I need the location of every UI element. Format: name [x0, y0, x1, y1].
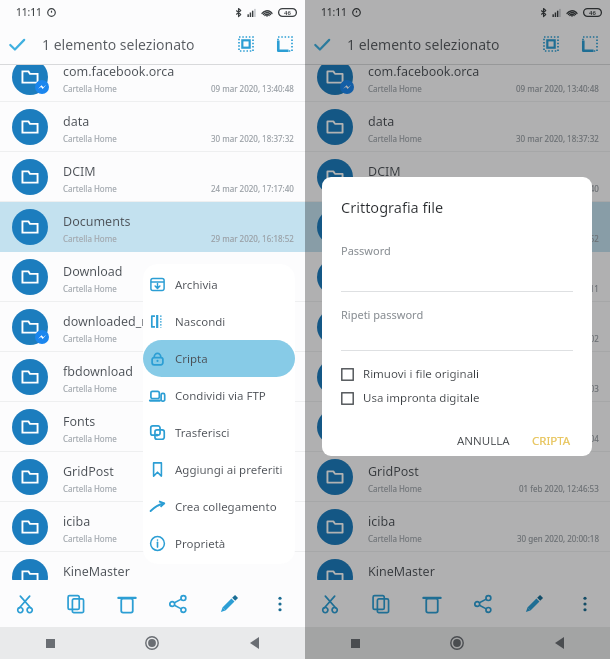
button[interactable]: com.facebook.orca	[0, 64, 305, 102]
button[interactable]: Done	[305, 28, 338, 61]
button[interactable]: Fonts	[305, 402, 610, 452]
staticText: 24 mar 2020, 17:17:40	[211, 183, 294, 194]
button[interactable]: Done	[0, 28, 33, 61]
button[interactable]: Back	[203, 627, 305, 659]
button[interactable]: Archivia	[143, 266, 295, 303]
staticText: 11:11	[321, 5, 347, 19]
staticText: Rimuovi i file originali	[363, 366, 480, 382]
staticText: 1 elemento selezionato	[42, 35, 195, 54]
button[interactable]: fbdownload	[305, 352, 610, 402]
button[interactable]: Rimuovi i file originali	[341, 363, 480, 385]
button[interactable]: Rename	[209, 580, 249, 627]
button[interactable]: Trasferisci	[143, 414, 295, 451]
staticText: data	[63, 113, 90, 130]
button[interactable]: Share	[158, 580, 198, 627]
button[interactable]: com.facebook.orca	[305, 64, 610, 102]
staticText: Cartella Home	[63, 533, 117, 544]
button[interactable]: Cut	[5, 580, 45, 627]
button[interactable]: Proprietà	[143, 525, 295, 562]
button[interactable]: Recents	[305, 627, 406, 659]
button[interactable]: DCIM	[0, 152, 305, 202]
button[interactable]: Rename	[514, 580, 554, 627]
button[interactable]: Nascondi	[143, 303, 295, 340]
button[interactable]: Invert selection	[269, 28, 301, 60]
button[interactable]: More options	[260, 580, 300, 627]
staticText: 01 feb 2020, 12:46:53	[519, 483, 599, 494]
button[interactable]: ANNULLA	[450, 427, 517, 455]
button[interactable]: Aggiungi ai preferiti	[143, 451, 295, 488]
staticText: Cartella Home	[63, 233, 117, 244]
button[interactable]: Select all	[535, 28, 567, 60]
staticText: Cartella Home	[368, 533, 422, 544]
staticText: 24 mar 2020, 17:17:40	[516, 183, 599, 194]
button[interactable]: Documents	[305, 202, 610, 252]
button[interactable]: Usa impronta digitale	[341, 387, 480, 409]
staticText: Cartella Home	[63, 283, 117, 294]
button[interactable]: Download	[0, 252, 305, 302]
staticText: fbdownload	[63, 363, 134, 380]
button[interactable]: Delete	[412, 580, 452, 627]
button[interactable]: data	[0, 102, 305, 152]
button[interactable]: Condividi via FTP	[143, 377, 295, 414]
button[interactable]: Share	[463, 580, 503, 627]
staticText: Archivia	[175, 277, 218, 293]
staticText: Crittografia file	[341, 197, 444, 217]
staticText: 25 mar 2020, 08:03:04	[211, 433, 294, 444]
staticText: Nascondi	[175, 314, 226, 330]
button[interactable]: Copy	[56, 580, 96, 627]
staticText: 28 mar 2020, 11:21:11	[516, 283, 599, 294]
button[interactable]: Cripta	[143, 340, 295, 377]
staticText: downloaded_r	[368, 313, 452, 330]
staticText: iciba	[368, 513, 396, 530]
button[interactable]: Invert selection	[574, 28, 606, 60]
button[interactable]: Home	[101, 627, 203, 659]
button[interactable]: downloaded_r	[305, 302, 610, 352]
staticText: Cartella Home	[368, 283, 422, 294]
staticText: DCIM	[368, 163, 401, 180]
staticText: 46	[589, 9, 596, 17]
button[interactable]: KineMaster	[0, 552, 305, 580]
staticText: 09 mar 2020, 13:40:48	[211, 83, 294, 94]
button[interactable]: DCIM	[305, 152, 610, 202]
button[interactable]: Delete	[107, 580, 147, 627]
button[interactable]: More options	[565, 580, 605, 627]
staticText: KineMaster	[368, 563, 435, 580]
button[interactable]: Download	[305, 252, 610, 302]
button[interactable]: Documents	[0, 202, 305, 252]
button[interactable]: Fonts	[0, 402, 305, 452]
staticText: Ripeti password	[341, 307, 424, 322]
staticText: Download	[63, 263, 123, 280]
staticText: 29 mar 2020, 16:18:52	[211, 233, 294, 244]
staticText: Cartella Home	[368, 133, 422, 144]
button[interactable]: Home	[406, 627, 508, 659]
button[interactable]: Back	[508, 627, 610, 659]
staticText: 1 elemento selezionato	[347, 35, 500, 54]
staticText: fbdownload	[368, 363, 439, 380]
staticText: Cartella Home	[63, 383, 117, 394]
staticText: Cartella Home	[63, 83, 117, 94]
staticText: CRIPTA	[532, 433, 571, 449]
staticText: Password	[341, 243, 391, 258]
button[interactable]: GridPost	[305, 452, 610, 502]
staticText: Cartella Home	[63, 433, 117, 444]
button[interactable]: data	[305, 102, 610, 152]
button[interactable]: Crea collegamento	[143, 488, 295, 525]
button[interactable]: CRIPTA	[525, 427, 578, 455]
button[interactable]: iciba	[305, 502, 610, 552]
staticText: Trasferisci	[175, 425, 230, 441]
button[interactable]: fbdownload	[0, 352, 305, 402]
button[interactable]: Copy	[361, 580, 401, 627]
button[interactable]: KineMaster	[305, 552, 610, 580]
staticText: Fonts	[63, 413, 96, 430]
staticText: 30 gen 2020, 20:00:18	[517, 533, 599, 544]
button[interactable]: Recents	[0, 627, 101, 659]
staticText: 28 mar 2020, 11:21:11	[211, 283, 294, 294]
button[interactable]: Cut	[310, 580, 350, 627]
button[interactable]: iciba	[0, 502, 305, 552]
button[interactable]: downloaded_r	[0, 302, 305, 352]
button[interactable]: Select all	[230, 28, 262, 60]
button[interactable]: GridPost	[0, 452, 305, 502]
